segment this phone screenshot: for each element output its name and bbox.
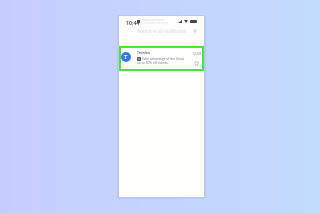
button[interactable]: Search in all mailboxes — [122, 27, 202, 40]
staticText: up to 50% off tickets. — [137, 61, 169, 65]
staticText: Search in all mailboxes — [137, 28, 186, 34]
staticText: Trainline — [137, 51, 151, 55]
staticText: Take advantage of the Great British R… — [142, 57, 191, 61]
staticText: 12:08 — [192, 51, 202, 56]
other: Star — [194, 61, 199, 66]
button[interactable]: T — [119, 46, 204, 71]
staticText: T — [124, 53, 128, 61]
staticText: Search in mail — [142, 17, 164, 21]
staticText: all inboxes primary — [140, 21, 169, 25]
staticText: 10:44 — [126, 19, 140, 26]
